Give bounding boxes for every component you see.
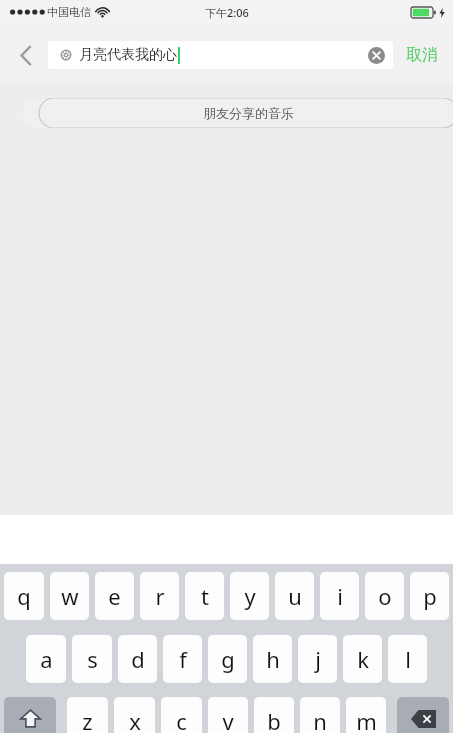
staticText: b	[267, 706, 281, 733]
staticText: 月亮代表我的心	[79, 46, 177, 64]
button[interactable]: d	[118, 635, 157, 683]
button[interactable]: g	[208, 635, 247, 683]
button[interactable]: z	[67, 697, 108, 733]
button[interactable]: p	[410, 572, 449, 620]
staticText: s	[87, 644, 98, 674]
staticText: m	[356, 706, 377, 733]
button[interactable]: k	[343, 635, 382, 683]
staticText: g	[221, 644, 235, 674]
staticText: a	[40, 644, 53, 674]
staticText: y	[244, 581, 256, 611]
button[interactable]: u	[275, 572, 314, 620]
staticText: 取消	[406, 45, 438, 65]
staticText: x	[129, 706, 141, 733]
button[interactable]: l	[388, 635, 427, 683]
staticText: j	[315, 644, 321, 674]
button[interactable]: w	[50, 572, 89, 620]
button[interactable]: h	[253, 635, 292, 683]
staticText: h	[266, 644, 280, 674]
button[interactable]: e	[95, 572, 134, 620]
button[interactable]: 月亮代表我的心	[48, 41, 393, 69]
button[interactable]: v	[208, 697, 248, 733]
staticText: d	[131, 644, 145, 674]
staticText: q	[17, 581, 31, 611]
staticText: p	[423, 581, 437, 611]
button[interactable]: Backspace	[397, 697, 449, 733]
button[interactable]: m	[346, 697, 386, 733]
button[interactable]: q	[4, 572, 44, 620]
button[interactable]: Shift	[4, 697, 56, 733]
button[interactable]: a	[26, 635, 66, 683]
button[interactable]: c	[161, 697, 202, 733]
button[interactable]: s	[72, 635, 112, 683]
staticText: 朋友分享的音乐	[203, 105, 294, 121]
staticText: 下午2:06	[205, 5, 249, 20]
staticText: k	[357, 644, 369, 674]
button[interactable]: j	[298, 635, 337, 683]
staticText: u	[288, 581, 302, 611]
staticText: e	[108, 581, 121, 611]
staticText: l	[405, 644, 411, 674]
button[interactable]: Clear text	[368, 47, 385, 64]
staticText: n	[313, 706, 327, 733]
staticText: w	[61, 581, 79, 611]
button[interactable]: i	[320, 572, 359, 620]
button[interactable]: 朋友分享的音乐	[22, 98, 453, 128]
staticText: v	[222, 706, 234, 733]
button[interactable]: Back	[6, 33, 46, 77]
staticText: t	[201, 581, 209, 611]
button[interactable]: r	[140, 572, 179, 620]
button[interactable]: n	[300, 697, 340, 733]
staticText: r	[155, 581, 165, 611]
button[interactable]: y	[230, 572, 269, 620]
staticText: c	[176, 706, 187, 733]
button[interactable]: 取消	[394, 35, 449, 75]
button[interactable]: f	[163, 635, 202, 683]
staticText: i	[337, 581, 343, 611]
button[interactable]: x	[114, 697, 155, 733]
staticText: f	[179, 644, 187, 674]
staticText: z	[82, 706, 93, 733]
button[interactable]: t	[185, 572, 224, 620]
staticText: 中国电信	[47, 5, 91, 19]
staticText: o	[378, 581, 392, 611]
button[interactable]: o	[365, 572, 404, 620]
button[interactable]: b	[254, 697, 294, 733]
